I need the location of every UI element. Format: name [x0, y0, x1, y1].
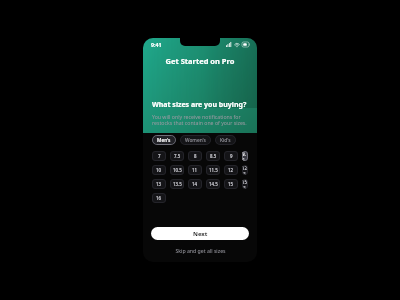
button[interactable]: 7.5 [170, 151, 184, 161]
staticText: 15 [228, 181, 234, 187]
staticText: You will only receive notifications for … [152, 113, 247, 127]
staticText: 7.5 [174, 153, 181, 159]
button[interactable]: 10 [152, 165, 166, 175]
staticText: Kid's [220, 137, 231, 144]
staticText: 13.5 [173, 181, 182, 187]
staticText: 14 [192, 181, 198, 187]
staticText: Skip and get all sizes [175, 247, 226, 254]
staticText: What sizes are you buying? [152, 100, 247, 110]
staticText: 9:41 [151, 41, 162, 48]
button[interactable]: 15 [224, 179, 238, 189]
button[interactable]: 14.5 [206, 179, 220, 189]
staticText: Women's [185, 137, 206, 144]
button[interactable]: 13.5 [170, 179, 184, 189]
staticText: 14.5 [209, 181, 218, 187]
staticText: 8 [194, 153, 197, 159]
button[interactable]: 13 [152, 179, 166, 189]
staticText: 15.5 [242, 179, 248, 189]
button[interactable]: Women's [180, 135, 211, 145]
staticText: 13 [156, 181, 162, 187]
button[interactable]: 8 [188, 151, 202, 161]
staticText: 9 [230, 153, 233, 159]
staticText: Get Started on Pro [143, 56, 257, 66]
button[interactable]: 11.5 [206, 165, 220, 175]
staticText: 8.5 [210, 153, 217, 159]
staticText: 12 [228, 167, 234, 173]
button[interactable]: 11 [188, 165, 202, 175]
staticText: Men's [157, 137, 171, 144]
button[interactable]: 9.5 [242, 151, 248, 161]
staticText: 7 [158, 153, 161, 159]
button[interactable]: Men's [152, 135, 176, 145]
staticText: 9.5 [242, 151, 248, 161]
button[interactable]: Kid's [215, 135, 236, 145]
button[interactable]: Next [151, 227, 249, 240]
button[interactable]: 12 [224, 165, 238, 175]
button[interactable]: Skip and get all sizes [143, 247, 257, 254]
staticText: 11 [192, 167, 198, 173]
button[interactable]: 10.5 [170, 165, 184, 175]
button[interactable]: 15.5 [242, 179, 248, 189]
button[interactable]: 16 [152, 193, 166, 203]
button[interactable]: 7 [152, 151, 166, 161]
button[interactable]: 14 [188, 179, 202, 189]
button[interactable]: 12.5 [242, 165, 248, 175]
staticText: 12.5 [242, 165, 248, 175]
staticText: 10 [156, 167, 162, 173]
staticText: 11.5 [209, 167, 218, 173]
button[interactable]: 8.5 [206, 151, 220, 161]
staticText: 16 [156, 195, 162, 201]
staticText: Next [193, 230, 208, 238]
staticText: 10.5 [173, 167, 182, 173]
button[interactable]: 9 [224, 151, 238, 161]
